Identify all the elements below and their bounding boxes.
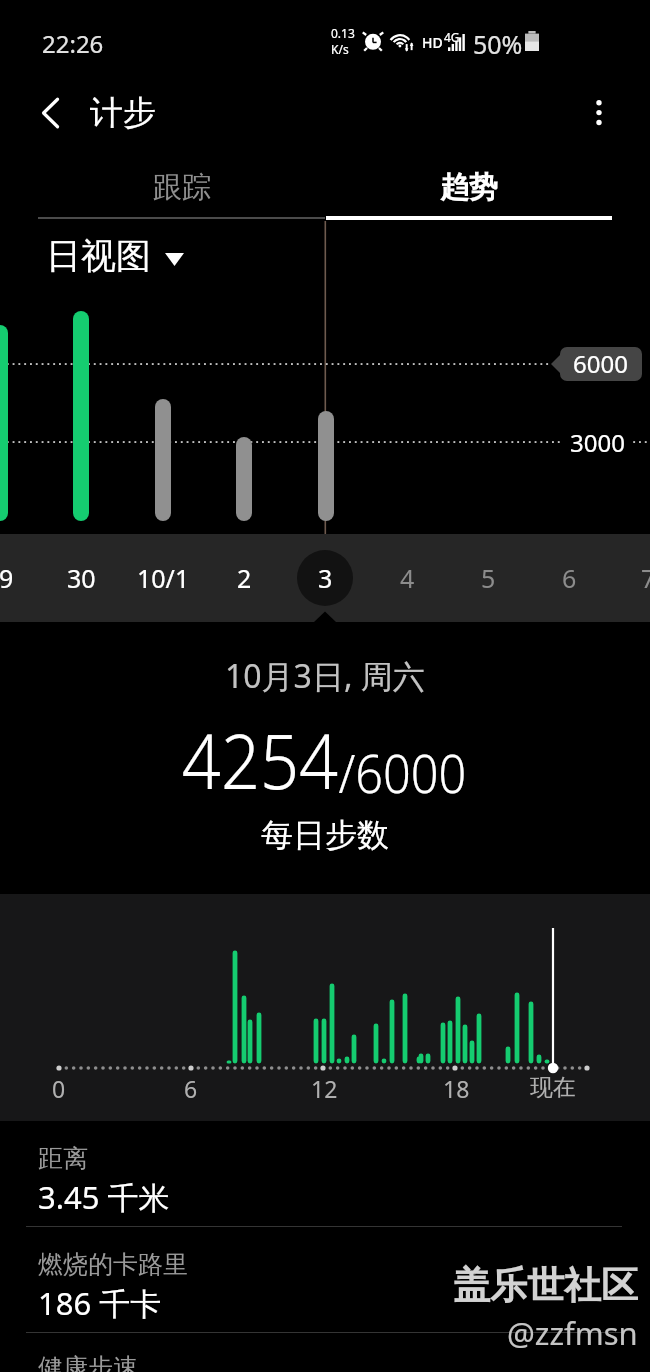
button[interactable]: 趋势	[325, 154, 612, 220]
staticText: 186 千卡	[38, 1282, 162, 1324]
staticText: 3	[318, 561, 333, 595]
button[interactable]: 7	[603, 534, 650, 622]
staticText: 4G	[444, 29, 460, 45]
staticText: 趋势	[440, 169, 498, 206]
button[interactable]: 跟踪	[38, 154, 325, 220]
button[interactable]: 健康步速	[0, 1352, 650, 1372]
button[interactable]: 10/1	[118, 534, 208, 622]
staticText: 跟踪	[153, 169, 211, 206]
staticText: 7	[641, 561, 650, 595]
staticText: 日视图	[46, 234, 151, 278]
button[interactable]: 3	[280, 534, 370, 622]
staticText: 10/1	[137, 561, 190, 595]
staticText: 9	[0, 561, 14, 595]
staticText: 健康步速	[38, 1352, 138, 1372]
button[interactable]: 日视图	[0, 225, 210, 287]
button[interactable]: 2	[199, 534, 289, 622]
staticText: 0	[52, 1073, 66, 1104]
button[interactable]: 燃烧的卡路里	[0, 1249, 650, 1335]
staticText: 6	[184, 1073, 198, 1104]
staticText: 18	[443, 1073, 470, 1104]
button[interactable]: 距离	[0, 1143, 650, 1229]
staticText: 燃烧的卡路里	[38, 1249, 188, 1280]
staticText: 每日步数	[261, 815, 389, 855]
staticText: 计步	[90, 92, 156, 134]
button[interactable]: More options	[573, 87, 625, 139]
staticText: 5	[481, 561, 496, 595]
button[interactable]: 5	[443, 534, 533, 622]
staticText: @zzfmsn	[507, 1312, 638, 1354]
staticText: 盖乐世社区	[453, 1262, 638, 1309]
button[interactable]: 6	[524, 534, 614, 622]
staticText: 2	[237, 561, 252, 595]
staticText: 6	[562, 561, 577, 595]
staticText: 22:26	[42, 27, 104, 60]
staticText: 距离	[38, 1143, 88, 1174]
button[interactable]: 4	[362, 534, 452, 622]
staticText: 10月3日, 周六	[225, 654, 425, 698]
staticText: 30	[67, 561, 96, 595]
staticText: 4	[400, 561, 415, 595]
staticText: 12	[311, 1073, 338, 1104]
staticText: 0.13	[331, 25, 355, 41]
staticText: /6000	[338, 735, 467, 809]
staticText: 3.45 千米	[38, 1176, 170, 1218]
staticText: 现在	[530, 1073, 576, 1102]
staticText: 6000	[573, 347, 628, 380]
button[interactable]: 9	[0, 534, 51, 622]
staticText: 4254	[182, 708, 338, 812]
staticText: K/s	[331, 41, 349, 57]
staticText: 50%	[473, 27, 523, 61]
button[interactable]: 30	[36, 534, 126, 622]
staticText: HD	[422, 33, 443, 52]
staticText: 3000	[570, 426, 625, 459]
button[interactable]: Back	[24, 87, 76, 139]
